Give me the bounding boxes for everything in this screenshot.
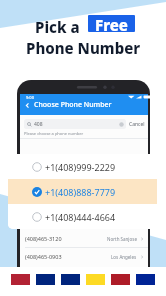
- staticText: +1(408)444-4664: [45, 211, 116, 223]
- staticText: 408: [34, 121, 43, 128]
- staticText: +1(408)999-2229: [45, 161, 116, 173]
- staticText: (408)465-3120: [25, 235, 62, 242]
- staticText: Please choose a phone number: [24, 131, 84, 136]
- staticText: Phone Number: [26, 38, 141, 58]
- button[interactable]: (408)465-0903: [20, 248, 148, 265]
- staticText: Pick a: [35, 17, 84, 37]
- other: Back: [24, 102, 31, 109]
- staticText: +1(408)888-7779: [45, 186, 116, 198]
- staticText: Los Angeles: [111, 254, 137, 260]
- staticText: Choose Phone Number: [34, 100, 112, 110]
- button[interactable]: +1(408)999-2229: [8, 154, 157, 179]
- staticText: (408)465-0903: [25, 253, 62, 260]
- button[interactable]: (408)465-3120: [20, 230, 148, 247]
- other: Clear: [119, 122, 124, 127]
- staticText: 9:00: [26, 95, 34, 100]
- button[interactable]: +1(408)444-4664: [8, 204, 157, 229]
- staticText: Free: [95, 15, 128, 32]
- button[interactable]: Cancel: [129, 121, 145, 128]
- staticText: North Sanjose: [107, 236, 137, 242]
- button[interactable]: +1(408)888-7779: [8, 179, 157, 204]
